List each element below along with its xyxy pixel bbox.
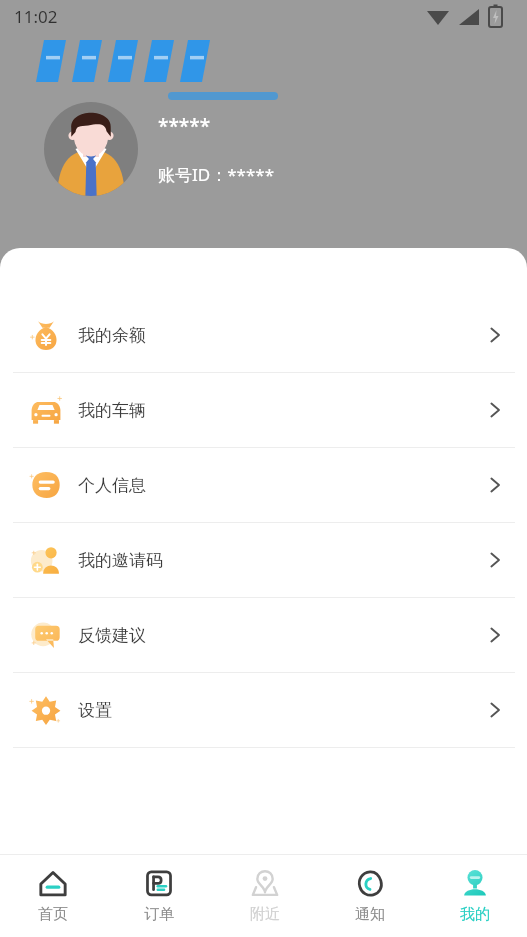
staticText: 我的车辆: [78, 400, 146, 421]
button[interactable]: 反馈建议: [0, 598, 527, 672]
button[interactable]: 我的邀请码: [0, 523, 527, 597]
staticText: 设置: [78, 700, 112, 721]
staticText: 反馈建议: [78, 625, 146, 646]
staticText: 通知: [355, 905, 385, 924]
staticText: 我的余额: [78, 325, 146, 346]
staticText: 账号ID：*****: [158, 163, 275, 186]
button[interactable]: 我的余额: [0, 298, 527, 372]
staticText: 订单: [144, 905, 174, 924]
button[interactable]: 设置: [0, 673, 527, 747]
button[interactable]: 个人信息: [0, 448, 527, 522]
button[interactable]: 通知: [317, 855, 422, 937]
staticText: 首页: [38, 905, 68, 924]
staticText: 我的: [460, 905, 490, 924]
staticText: 个人信息: [78, 475, 146, 496]
button[interactable]: 首页: [0, 855, 106, 937]
button[interactable]: 我的车辆: [0, 373, 527, 447]
button[interactable]: 订单: [106, 855, 212, 937]
staticText: *****: [158, 113, 211, 139]
staticText: 11:02: [14, 5, 58, 28]
staticText: 我的邀请码: [78, 550, 163, 571]
button[interactable]: 附近: [212, 855, 317, 937]
staticText: 附近: [250, 905, 280, 924]
button[interactable]: 我的: [422, 855, 527, 937]
